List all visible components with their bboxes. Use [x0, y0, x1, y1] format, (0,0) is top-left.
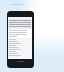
button[interactable]: Phone preview [7, 11, 34, 68]
